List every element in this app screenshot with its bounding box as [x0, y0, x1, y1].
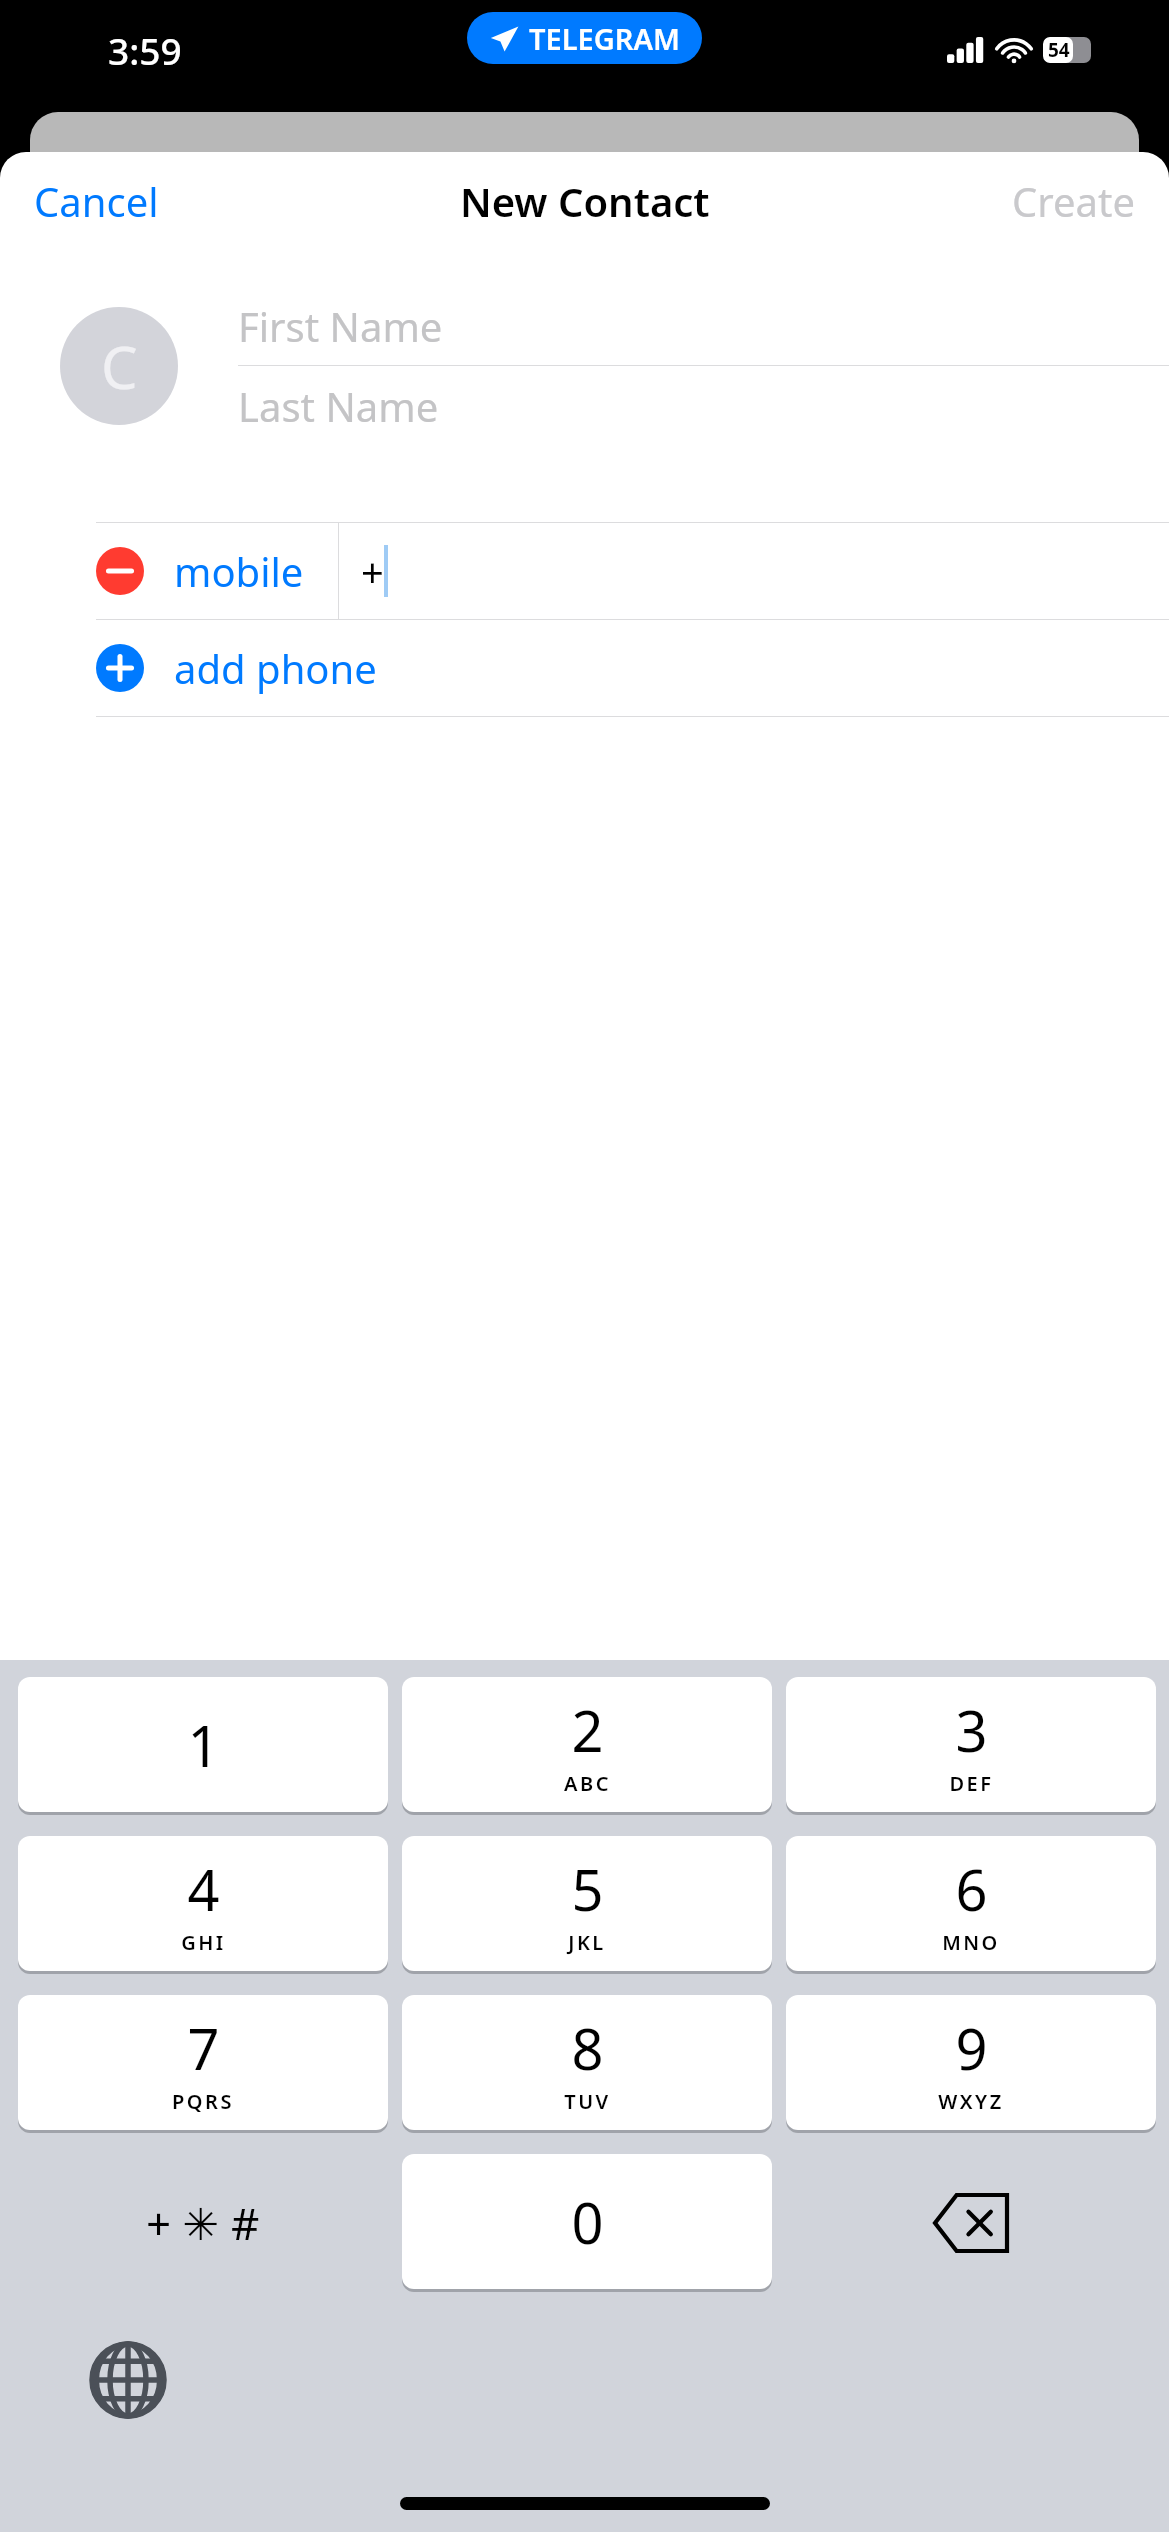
staticText: New Contact	[460, 174, 710, 228]
staticText: Last Name	[238, 379, 439, 433]
staticText: 5	[571, 1851, 604, 1927]
button[interactable]: Symbols	[18, 2154, 388, 2292]
staticText: C	[101, 327, 138, 406]
staticText: JKL	[568, 1929, 606, 1956]
staticText: 9	[955, 2010, 988, 2086]
button[interactable]: Create	[978, 160, 1169, 242]
staticText: add phone	[174, 641, 377, 695]
staticText: 54	[1048, 37, 1070, 63]
staticText: 0	[571, 2184, 604, 2260]
button[interactable]: 2	[402, 1677, 772, 1812]
staticText: mobile	[174, 544, 304, 598]
staticText: 8	[571, 2010, 604, 2086]
staticText: 6	[955, 1851, 988, 1927]
staticText: Create	[1012, 174, 1135, 228]
staticText: GHI	[181, 1929, 226, 1956]
button[interactable]: add phone	[0, 620, 1169, 716]
button[interactable]: Delete	[786, 2154, 1156, 2292]
staticText: ABC	[564, 1770, 611, 1797]
button[interactable]: 1	[18, 1677, 388, 1812]
button[interactable]: 0	[402, 2154, 772, 2289]
button[interactable]: 3	[786, 1677, 1156, 1812]
staticText: 7	[187, 2010, 220, 2086]
staticText: 3:59	[108, 25, 182, 75]
staticText: First Name	[238, 299, 443, 353]
button[interactable]: Switch keyboard language	[76, 2328, 180, 2432]
button[interactable]: Add contact photo	[60, 307, 178, 425]
staticText: 2	[571, 1692, 604, 1768]
staticText: PQRS	[172, 2088, 234, 2115]
button[interactable]: 4	[18, 1836, 388, 1971]
button[interactable]: mobile	[0, 523, 1169, 619]
staticText: +	[361, 544, 384, 598]
staticText: WXYZ	[938, 2088, 1004, 2115]
staticText: MNO	[942, 1929, 1000, 1956]
button[interactable]: Last Name	[238, 366, 1169, 446]
button[interactable]: 7	[18, 1995, 388, 2130]
staticText: 1	[187, 1707, 220, 1783]
staticText: DEF	[949, 1770, 994, 1797]
button[interactable]: 9	[786, 1995, 1156, 2130]
staticText: + ✳ #	[146, 2193, 260, 2253]
button[interactable]: 8	[402, 1995, 772, 2130]
staticText: TELEGRAM	[529, 19, 680, 58]
button[interactable]: Cancel	[0, 160, 193, 242]
staticText: 3	[955, 1692, 988, 1768]
button[interactable]: 6	[786, 1836, 1156, 1971]
staticText: 4	[187, 1851, 220, 1927]
button[interactable]: First Name	[238, 286, 1169, 365]
staticText: Cancel	[34, 174, 159, 228]
staticText: TUV	[564, 2088, 611, 2115]
button[interactable]: 5	[402, 1836, 772, 1971]
